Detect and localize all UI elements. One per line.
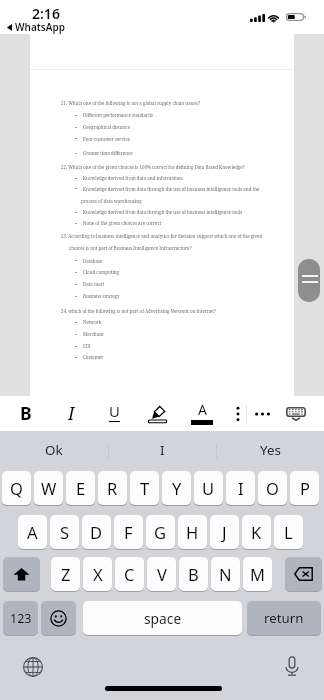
button[interactable]: Bold [11,396,41,431]
staticText: V [157,563,167,585]
staticText: X [93,563,103,585]
button[interactable]: A [18,515,47,549]
button[interactable]: X [83,557,112,591]
button[interactable]: L [274,515,303,549]
button[interactable]: Ok [0,431,108,471]
button[interactable]: Highlight [142,396,172,431]
button[interactable]: C [115,557,144,591]
staticText: Poor customer service [83,136,130,142]
button[interactable]: Text colour [187,396,217,431]
staticText: R [107,477,118,499]
staticText: A [27,521,38,543]
staticText: T [140,477,150,499]
button[interactable]: M [243,557,272,591]
staticText: None of the given choices are correct [83,220,162,226]
button[interactable]: Italic [56,396,86,431]
staticText: M [250,563,265,585]
button[interactable]: O [258,471,287,505]
staticText: A [198,400,207,419]
staticText: Greater time difference [83,150,133,156]
staticText: space [144,609,182,628]
button[interactable]: T [130,471,159,505]
staticText: Y [172,477,182,499]
staticText: WhatsApp [15,20,65,34]
button[interactable]: U [194,471,223,505]
staticText: Knowledge derived from data through the … [83,186,260,192]
staticText: Data mart [83,281,105,287]
staticText: process of data warehousing [81,198,142,204]
staticText: Geographical distance [83,124,130,130]
button[interactable]: Y [162,471,191,505]
staticText: L [284,521,293,543]
button[interactable]: Underline [99,396,129,431]
button[interactable]: E [66,471,95,505]
button[interactable]: Yes [217,431,324,471]
staticText: J [222,521,227,543]
button[interactable]: G [146,515,175,549]
button[interactable]: H [178,515,207,549]
button[interactable]: P [290,471,319,505]
button[interactable]: More formatting [223,396,253,431]
staticText: D [90,521,103,543]
button[interactable]: S [50,515,79,549]
staticText: Z [61,563,71,585]
button[interactable]: D [82,515,111,549]
staticText: Business strategy [83,293,120,299]
staticText: Ok [45,441,63,459]
staticText: H [186,521,199,543]
button[interactable]: K [242,515,271,549]
staticText: 23. According to business intelligence a… [61,233,263,239]
staticText: G [154,521,167,543]
staticText: O [266,477,279,499]
button[interactable]: Change keyboard [20,654,46,680]
button[interactable]: Emoji [41,601,76,635]
button[interactable]: 123 [3,601,38,635]
staticText: 2:16 [32,4,60,23]
staticText: 22. Which one of the given choices is 10… [61,164,245,170]
button[interactable]: Hide keyboard [281,396,311,431]
staticText: C [124,563,135,585]
button[interactable]: Backspace [285,557,322,591]
button[interactable]: space [83,601,242,635]
button[interactable]: F [114,515,143,549]
button[interactable]: W [34,471,63,505]
staticText: I [238,477,244,499]
staticText: B [188,563,199,585]
staticText: Cloud computing [83,269,120,275]
staticText: Knowledge derived from data and informat… [83,175,184,181]
staticText: Customer [83,354,104,360]
button[interactable]: Resize panel [298,259,320,302]
button[interactable]: Q [2,471,31,505]
button[interactable]: N [211,557,240,591]
staticText: W [41,477,57,499]
staticText: U [202,477,215,499]
staticText: return [264,609,304,627]
button[interactable]: Dictation [279,653,305,679]
staticText: F [124,521,133,543]
staticText: 21. Which one of the following is not a … [61,100,201,106]
staticText: Yes [260,441,281,459]
button[interactable]: return [247,601,321,635]
button[interactable]: More options [247,396,277,431]
staticText: U [109,401,120,421]
staticText: Q [10,477,23,499]
button[interactable]: J [210,515,239,549]
button[interactable]: Z [51,557,80,591]
staticText: N [219,563,232,585]
staticText: S [60,521,70,543]
button[interactable]: R [98,471,127,505]
button[interactable]: I [226,471,255,505]
button[interactable]: I [109,431,216,471]
button[interactable]: V [147,557,176,591]
staticText: 24. which of the following is not part o… [61,308,216,314]
staticText: Merchant [83,331,104,337]
staticText: choices is not part of Business Intellig… [69,245,192,251]
staticText: Knowledge derived from data through the … [83,209,243,215]
staticText: I [160,441,165,459]
button[interactable]: Shift [3,557,40,591]
staticText: Different performance standards [83,112,153,118]
button[interactable]: B [179,557,208,591]
staticText: I [68,401,75,425]
staticText: Network [83,319,102,325]
staticText: EDI [83,343,91,349]
